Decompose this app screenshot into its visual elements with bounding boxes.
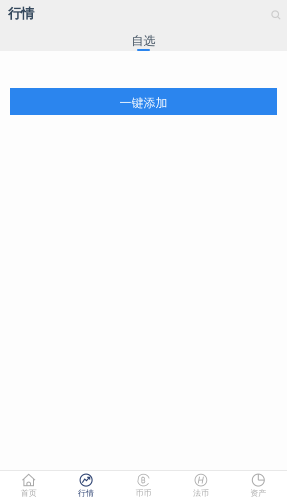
button[interactable]: 币币 bbox=[115, 471, 172, 499]
staticText: 资产 bbox=[250, 488, 266, 498]
staticText: 一键添加 bbox=[119, 96, 167, 110]
button[interactable]: 一键添加 bbox=[10, 88, 277, 115]
staticText: 首页 bbox=[21, 488, 37, 498]
button[interactable]: 行情 bbox=[57, 471, 115, 499]
button[interactable]: Search bbox=[267, 1, 287, 24]
staticText: 法币 bbox=[193, 488, 209, 498]
staticText: 币币 bbox=[135, 488, 151, 498]
button[interactable]: 法币 bbox=[172, 471, 230, 499]
button[interactable]: 资产 bbox=[230, 471, 287, 499]
button[interactable]: 首页 bbox=[0, 471, 57, 499]
staticText: 自选 bbox=[131, 33, 155, 48]
button[interactable]: 自选 bbox=[117, 0, 169, 51]
staticText: 行情 bbox=[78, 488, 94, 498]
staticText: 行情 bbox=[8, 5, 34, 22]
